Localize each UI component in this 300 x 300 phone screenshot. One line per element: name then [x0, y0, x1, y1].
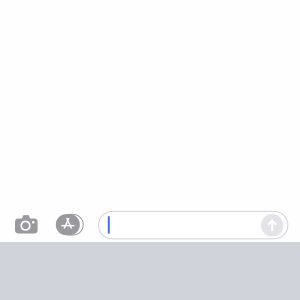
- button[interactable]: Camera: [7, 207, 46, 241]
- button[interactable]: Send: [259, 212, 285, 239]
- button[interactable]: Apps: [50, 208, 89, 241]
